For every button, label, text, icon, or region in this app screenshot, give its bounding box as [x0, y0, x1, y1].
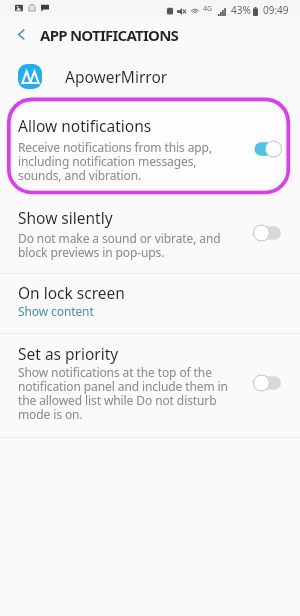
- staticText: Show content: [18, 303, 94, 319]
- button[interactable]: Back: [6, 17, 36, 51]
- staticText: mode is on.: [18, 406, 83, 422]
- staticText: notification panel and include them in: [18, 378, 228, 394]
- staticText: APP NOTIFICATIONS: [40, 25, 179, 45]
- staticText: Allow notifications: [18, 115, 152, 136]
- button[interactable]: ApowerMirror: [0, 51, 300, 99]
- staticText: Do not make a sound or vibrate, and: [18, 230, 221, 246]
- staticText: including notification messages,: [18, 153, 197, 169]
- staticText: the allowed list while Do not disturb: [18, 392, 217, 408]
- staticText: 09:49: [263, 3, 289, 17]
- button[interactable]: Switch off: [252, 373, 282, 393]
- staticText: 4G: [203, 4, 213, 14]
- button[interactable]: Switch off: [252, 223, 282, 243]
- staticText: Show silently: [18, 207, 113, 228]
- staticText: Show notifications at the top of the: [18, 364, 212, 380]
- staticText: 43%: [231, 3, 251, 17]
- staticText: On lock screen: [18, 282, 125, 303]
- staticText: sounds, and vibration.: [18, 167, 142, 183]
- button[interactable]: [0, 99, 300, 193]
- button[interactable]: [0, 194, 300, 272]
- button[interactable]: Switch on: [252, 139, 282, 159]
- button[interactable]: [0, 273, 300, 332]
- staticText: Receive notifications from this app,: [18, 139, 212, 155]
- button[interactable]: [0, 334, 300, 436]
- staticText: Set as priority: [18, 343, 119, 364]
- staticText: ApowerMirror: [65, 66, 168, 87]
- staticText: block previews in pop-ups.: [18, 244, 165, 260]
